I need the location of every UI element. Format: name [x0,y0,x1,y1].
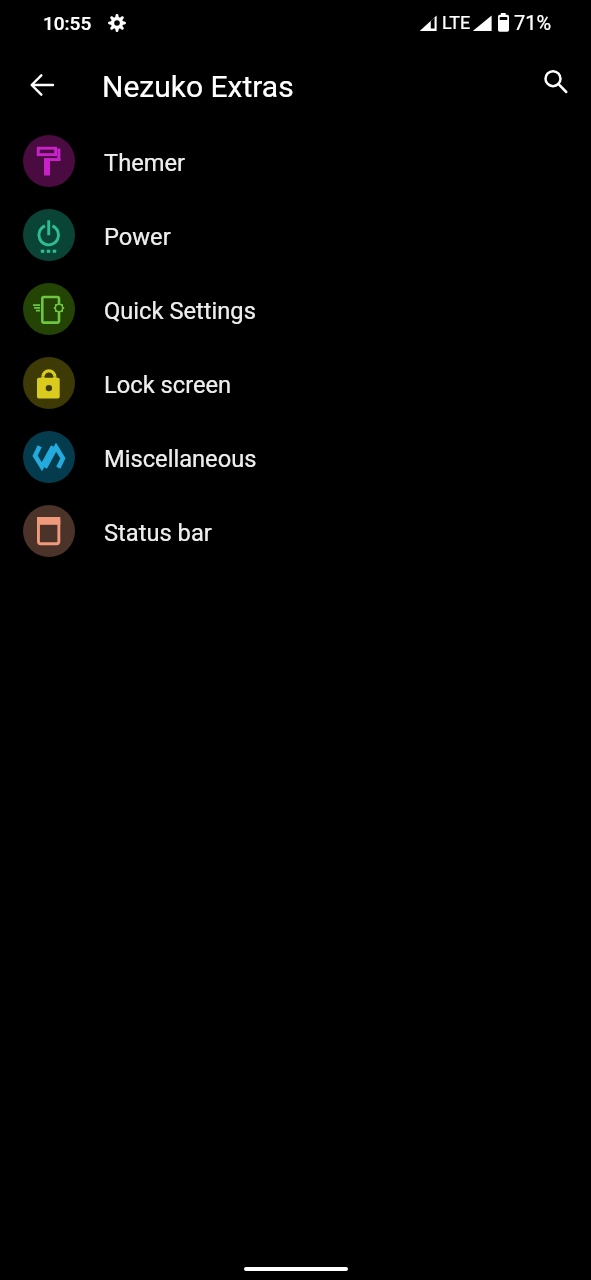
button[interactable]: Lock screen [0,346,591,420]
staticText: Lock screen [104,371,232,399]
button[interactable]: Quick Settings [0,272,591,346]
staticText: LTE [442,12,471,33]
staticText: Nezuko Extras [102,69,294,104]
button[interactable]: Miscellaneous [0,420,591,494]
button[interactable]: Themer [0,124,591,198]
button[interactable]: Power [0,198,591,272]
staticText: 10:55 [43,12,92,34]
button[interactable]: Back [18,61,66,109]
staticText: Miscellaneous [104,445,257,473]
staticText: Themer [104,149,186,177]
staticText: 71% [514,11,552,34]
button[interactable]: Search [531,61,579,109]
staticText: Power [104,223,171,251]
staticText: Status bar [104,519,212,547]
button[interactable]: Status bar [0,494,591,568]
staticText: Quick Settings [104,297,256,325]
